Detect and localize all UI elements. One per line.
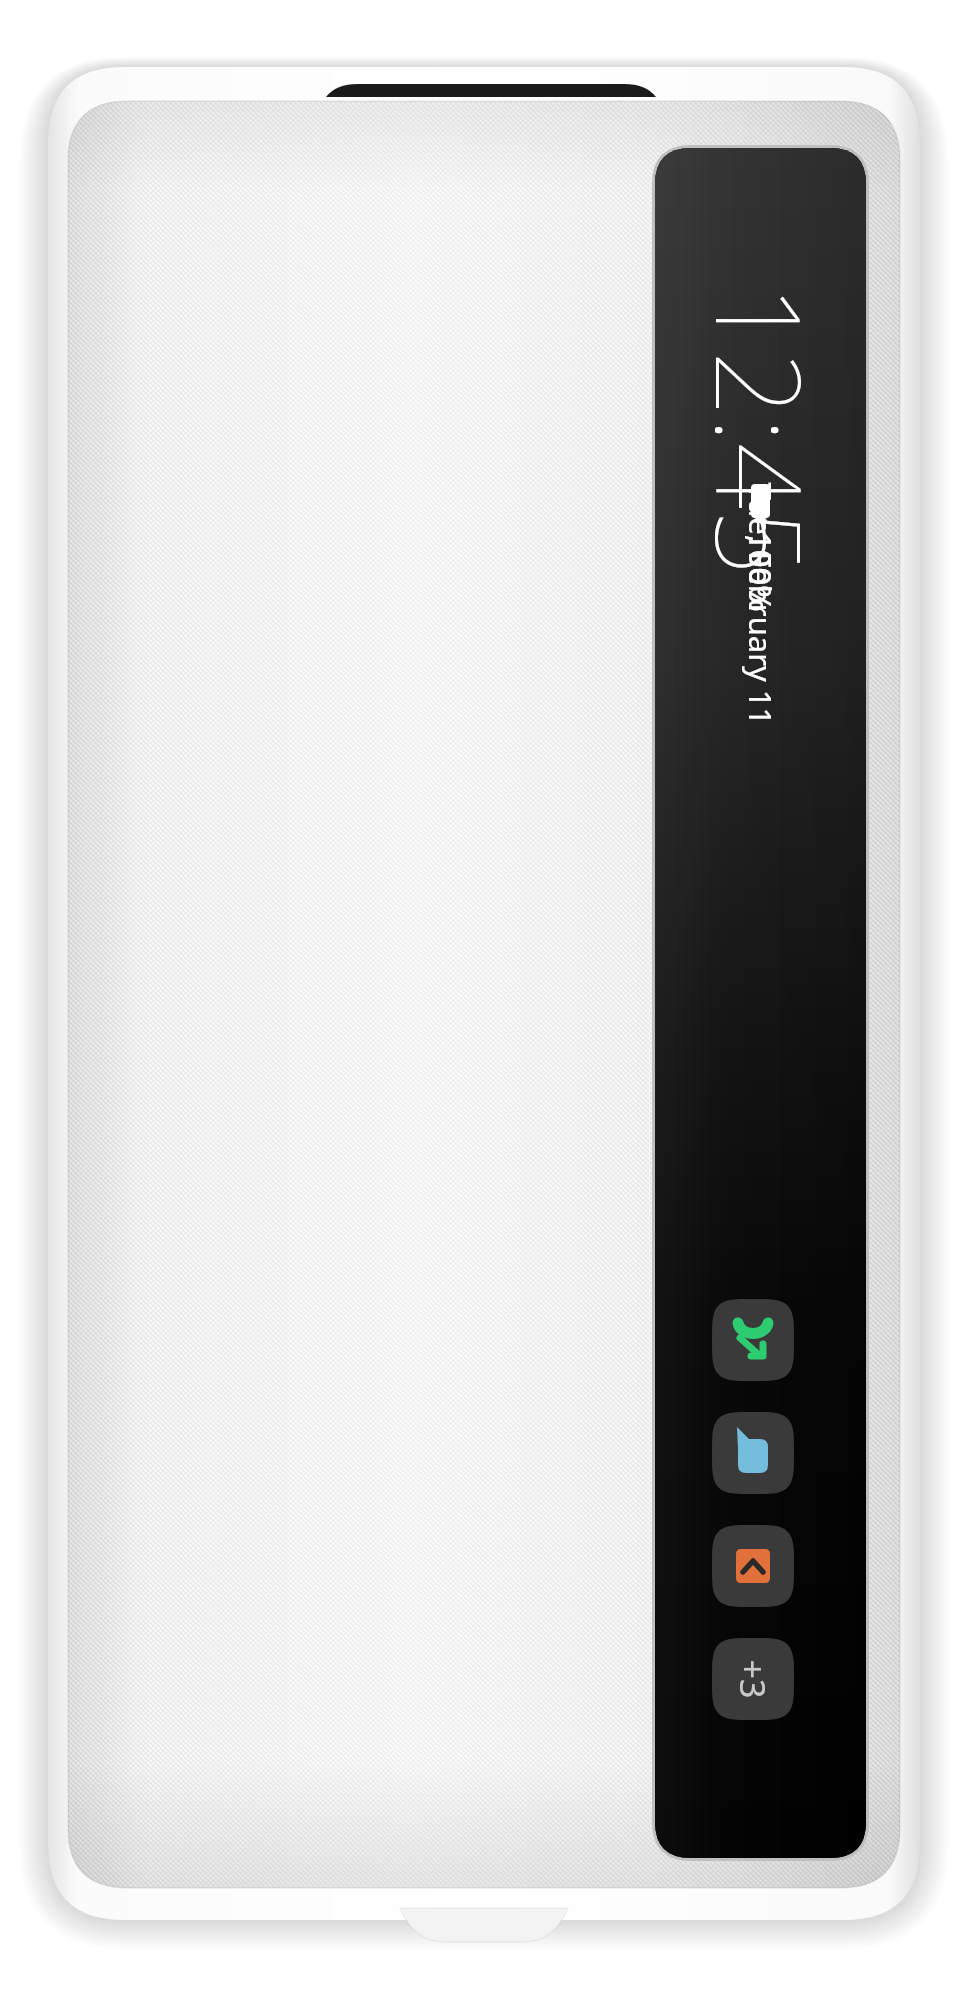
button[interactable]: Clear View cover screen xyxy=(0,0,968,2000)
